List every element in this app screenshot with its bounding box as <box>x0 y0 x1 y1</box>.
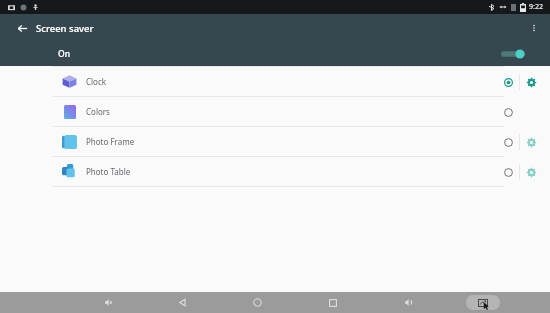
staticText: On <box>58 48 70 60</box>
button[interactable]: Clock <box>0 67 550 96</box>
button[interactable]: Volume down <box>70 292 145 313</box>
button[interactable]: Colors <box>0 97 550 126</box>
button[interactable]: Home <box>220 292 295 313</box>
button[interactable]: Recent apps <box>295 292 370 313</box>
staticText: Screen saver <box>36 22 94 35</box>
button[interactable]: Screenshot <box>445 292 520 313</box>
button[interactable]: Photo Frame <box>0 127 550 156</box>
staticText: Photo Frame <box>86 136 135 147</box>
button[interactable]: Clock settings <box>520 71 542 93</box>
button[interactable]: Photo Frame settings <box>520 131 542 153</box>
staticText: Photo Table <box>86 166 131 177</box>
button[interactable]: Select Photo Frame <box>497 131 519 153</box>
button[interactable]: Volume up <box>370 292 445 313</box>
button[interactable]: Select Photo Table <box>497 161 519 183</box>
staticText: Colors <box>86 106 110 117</box>
button[interactable]: Back <box>12 18 32 38</box>
button[interactable]: On <box>0 42 550 66</box>
button[interactable]: Select Clock <box>497 71 519 93</box>
button[interactable]: Select Colors <box>497 101 519 123</box>
button[interactable]: Photo Table settings <box>520 161 542 183</box>
staticText: 9:22 <box>529 2 543 12</box>
button[interactable]: Photo Table <box>0 157 550 186</box>
button[interactable]: Back <box>145 292 220 313</box>
staticText: Clock <box>86 76 107 87</box>
button[interactable]: More options <box>524 18 544 38</box>
